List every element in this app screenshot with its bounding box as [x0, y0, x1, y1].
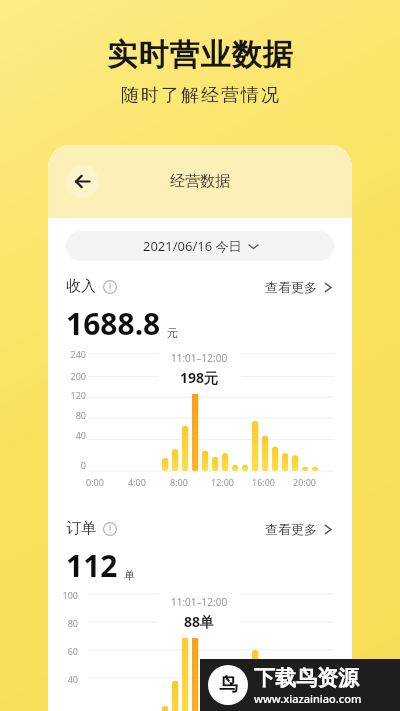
staticText: 实时营业数据	[107, 36, 293, 74]
staticText: 60	[56, 645, 78, 657]
staticText: 2021/06/16 今日	[143, 237, 242, 255]
staticText: 收入	[66, 277, 96, 296]
staticText: 40	[56, 429, 86, 441]
staticText: 元	[167, 326, 178, 340]
staticText: 11:01–12:00	[171, 351, 228, 365]
staticText: 80	[56, 617, 78, 629]
staticText: 100	[56, 589, 78, 601]
staticText: 经营数据	[170, 172, 230, 191]
staticText: 80	[56, 409, 86, 421]
staticText: 120	[56, 389, 86, 401]
staticText: 12:00	[211, 476, 235, 488]
staticText: 0:00	[86, 476, 104, 488]
staticText: 16:00	[252, 476, 276, 488]
staticText: 0	[56, 459, 86, 471]
staticText: 11:01–12:00	[171, 595, 228, 609]
staticText: 查看更多	[265, 279, 317, 295]
staticText: 8:00	[170, 476, 188, 488]
staticText: 200	[56, 370, 86, 382]
staticText: 20:00	[293, 476, 317, 488]
button[interactable]: 查看更多	[265, 279, 334, 295]
staticText: 40	[56, 673, 78, 685]
staticText: 查看更多	[265, 521, 317, 537]
staticText: 下载鸟资源	[254, 665, 359, 691]
staticText: 198元	[180, 368, 219, 387]
staticText: 112	[66, 545, 118, 586]
button[interactable]: 查看更多	[265, 521, 334, 537]
button[interactable]: Info	[103, 280, 117, 294]
button[interactable]: Back	[66, 165, 99, 198]
staticText: 240	[56, 348, 86, 360]
staticText: 鸟	[219, 673, 238, 697]
staticText: www.xiazainiao.com	[254, 691, 362, 706]
staticText: 88单	[184, 612, 215, 631]
staticText: 单	[124, 568, 135, 582]
button[interactable]: Info	[103, 522, 117, 536]
staticText: 订单	[66, 519, 96, 538]
staticText: 1688.8	[66, 303, 161, 344]
staticText: 4:00	[128, 476, 146, 488]
button[interactable]: 2021/06/16 今日	[66, 231, 334, 261]
staticText: 随时了解经营情况	[120, 84, 280, 107]
